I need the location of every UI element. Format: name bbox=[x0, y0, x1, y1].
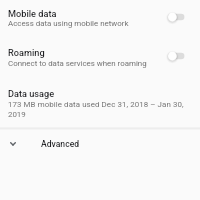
button[interactable] bbox=[0, 43, 200, 79]
staticText: Access data using mobile network bbox=[8, 19, 129, 28]
button[interactable] bbox=[0, 83, 200, 127]
staticText: Advanced bbox=[41, 139, 80, 149]
button[interactable] bbox=[0, 3, 200, 39]
staticText: Data usage bbox=[8, 88, 55, 99]
staticText: Mobile data bbox=[8, 8, 57, 19]
staticText: Roaming bbox=[8, 47, 45, 58]
staticText: Connect to data services when roaming bbox=[8, 59, 147, 68]
button[interactable]: Mobile data bbox=[157, 4, 189, 30]
staticText: 173 MB mobile data used Dec 31, 2018 – J… bbox=[8, 100, 184, 109]
button[interactable] bbox=[0, 129, 200, 159]
staticText: 2019 bbox=[8, 110, 26, 119]
button[interactable]: Roaming bbox=[157, 43, 189, 69]
